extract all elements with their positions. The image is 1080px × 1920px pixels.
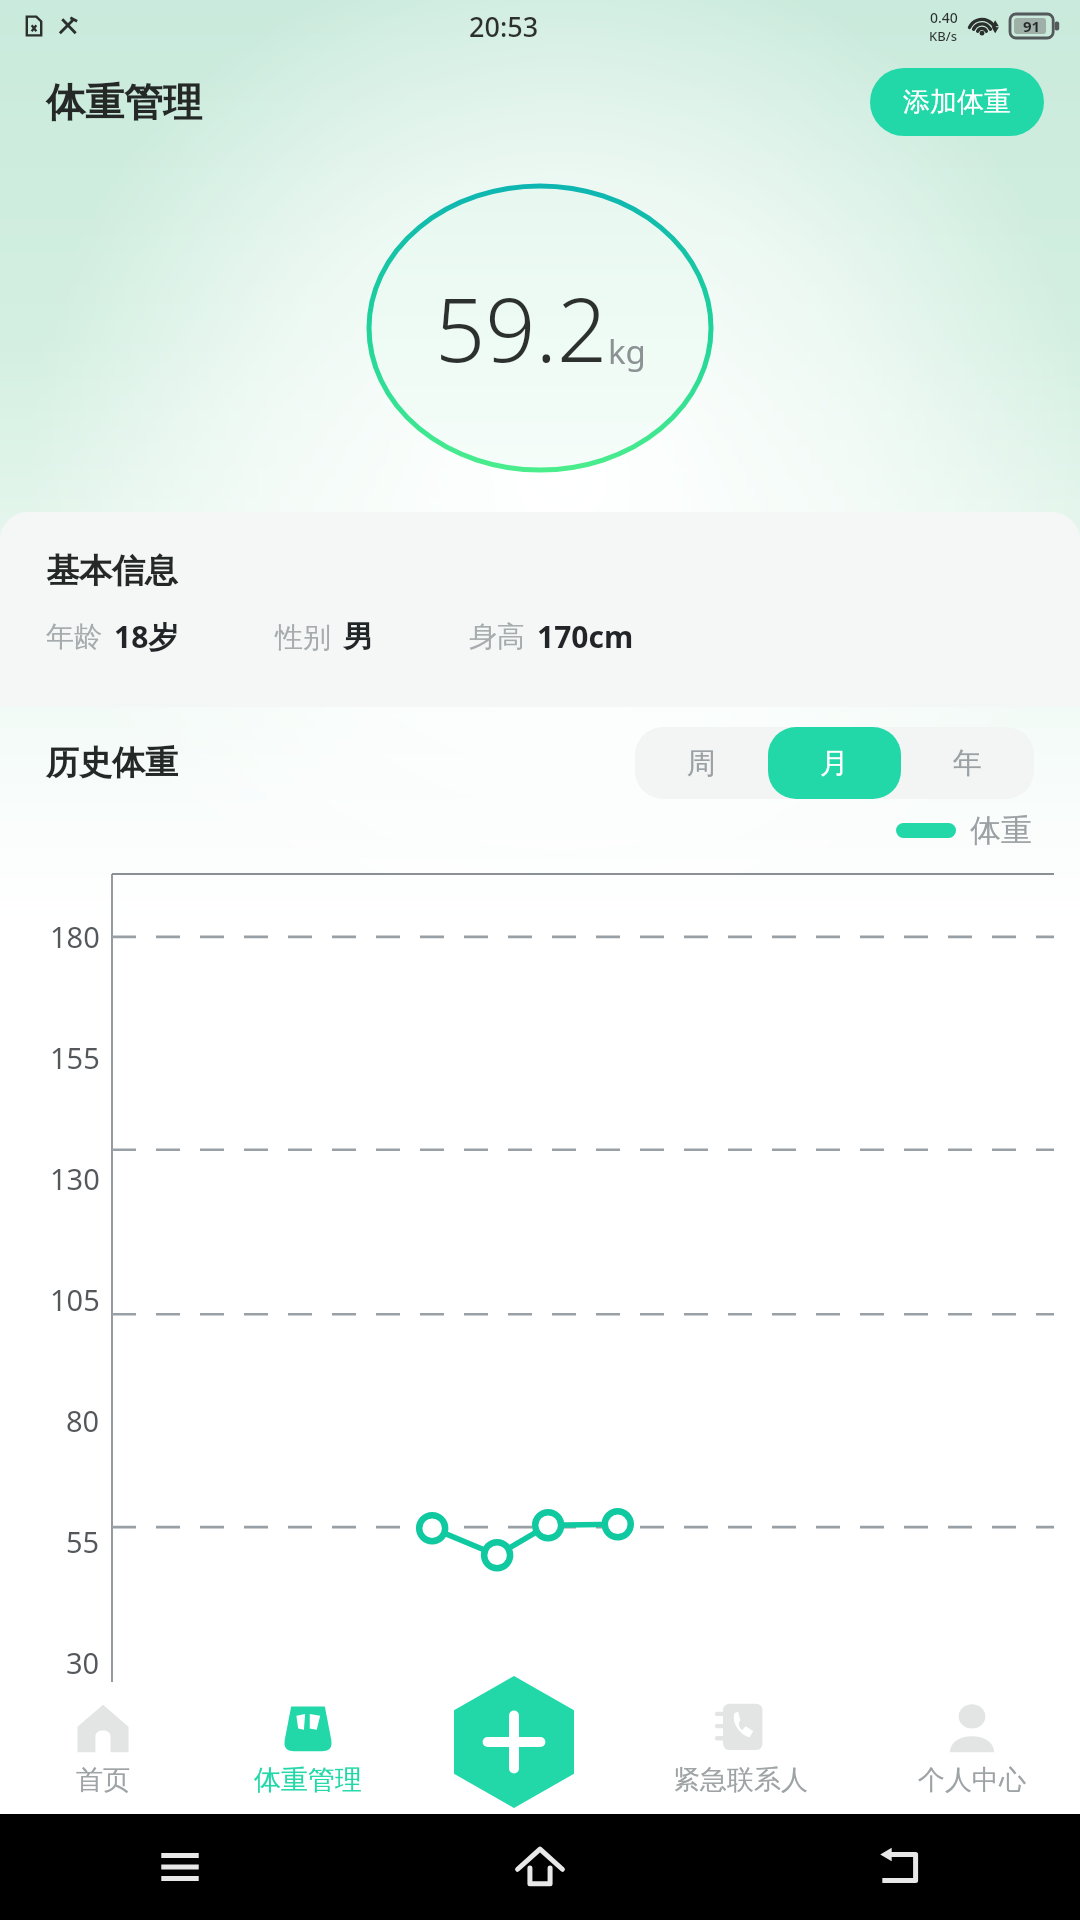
staticText: 20:53: [469, 8, 539, 45]
staticText: 180: [50, 917, 100, 956]
staticText: 59.2: [435, 268, 608, 388]
staticText: 添加体重: [903, 85, 1011, 119]
staticText: 体重: [970, 811, 1032, 850]
button[interactable]: 月: [768, 727, 901, 799]
staticText: 年: [953, 745, 982, 782]
staticText: 历史体重: [46, 742, 178, 784]
staticText: 身高: [469, 619, 525, 654]
staticText: 体重管理: [254, 1763, 362, 1797]
button[interactable]: 个人中心: [864, 1682, 1080, 1814]
staticText: 130: [50, 1159, 100, 1198]
button[interactable]: Back: [870, 1837, 930, 1897]
staticText: KB/s: [929, 27, 958, 45]
staticText: 80: [66, 1401, 100, 1440]
staticText: 105: [50, 1280, 100, 1319]
button[interactable]: 添加体重: [870, 68, 1044, 136]
button[interactable]: 首页: [0, 1682, 205, 1814]
staticText: 男: [343, 618, 373, 656]
staticText: 30: [66, 1643, 100, 1682]
staticText: 18岁: [114, 616, 179, 657]
staticText: 紧急联系人: [673, 1763, 808, 1797]
staticText: 周: [687, 745, 716, 782]
staticText: 体重管理: [46, 78, 202, 127]
button[interactable]: 体重管理: [205, 1682, 411, 1814]
staticText: 首页: [76, 1763, 130, 1797]
staticText: 性别: [275, 620, 331, 655]
staticText: 0.40: [930, 8, 958, 27]
staticText: 55: [66, 1522, 100, 1561]
staticText: 170cm: [537, 616, 634, 657]
staticText: 个人中心: [918, 1763, 1026, 1797]
button[interactable]: Recent apps: [150, 1837, 210, 1897]
staticText: 155: [50, 1038, 100, 1077]
staticText: 月: [820, 745, 849, 782]
button[interactable]: 年: [901, 727, 1034, 799]
staticText: 年龄: [46, 619, 102, 654]
button[interactable]: 周: [635, 727, 768, 799]
button[interactable]: 紧急联系人: [617, 1682, 864, 1814]
staticText: 基本信息: [46, 550, 178, 592]
staticText: 91: [1023, 16, 1041, 36]
button[interactable]: Add weight record: [454, 1676, 574, 1808]
staticText: kg: [608, 329, 646, 374]
button[interactable]: Home: [509, 1836, 571, 1898]
